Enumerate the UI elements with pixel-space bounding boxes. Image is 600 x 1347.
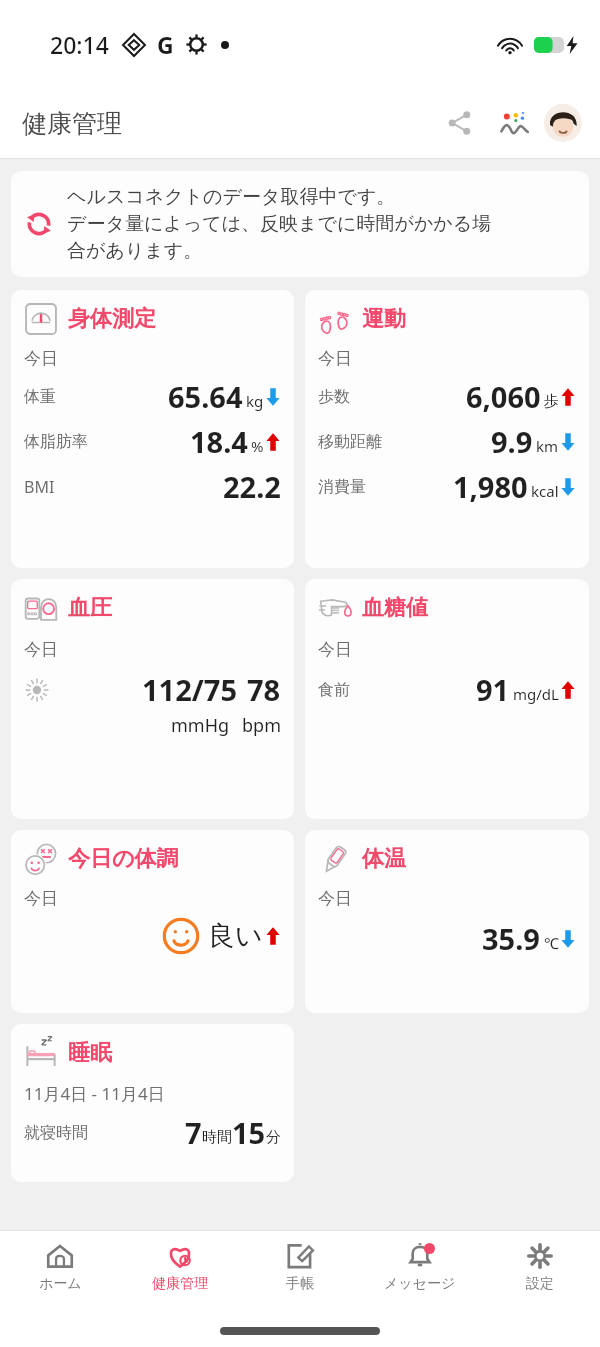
staticText: 健康管理 (22, 108, 122, 139)
staticText: 血圧 (68, 594, 112, 622)
staticText: 今日 (24, 639, 58, 660)
staticText: 6,060 (466, 377, 541, 416)
staticText: 11月4日 - 11月4日 (24, 1082, 165, 1105)
staticText: 移動距離 (318, 432, 382, 452)
staticText: kcal (531, 481, 559, 501)
staticText: BMI (24, 476, 55, 498)
button[interactable]: メッセージ (360, 1231, 480, 1315)
staticText: 食前 (318, 680, 350, 700)
staticText: 設定 (526, 1275, 554, 1293)
staticText: 78 (247, 670, 281, 709)
button[interactable]: 設定 (480, 1231, 600, 1315)
staticText: 18.4 (190, 422, 248, 461)
staticText: mg/dL (513, 684, 559, 704)
staticText: kg (246, 391, 264, 411)
staticText: 合があります。 (67, 239, 203, 263)
staticText: 血糖値 (362, 594, 428, 622)
button[interactable]: 体温 (305, 830, 589, 1013)
staticText: 体重 (24, 387, 56, 407)
staticText: 1,980 (453, 467, 528, 506)
staticText: 15 (232, 1113, 266, 1152)
button[interactable]: 手帳 (240, 1231, 360, 1315)
staticText: bpm (242, 713, 281, 738)
staticText: ヘルスコネクトのデータ取得中です。 (67, 185, 396, 209)
staticText: 今日 (318, 888, 352, 909)
staticText: 9.9 (491, 422, 533, 461)
button[interactable]: ヘルスコネクトのデータ取得中です。 (11, 171, 589, 277)
staticText: 体温 (362, 845, 406, 873)
button[interactable]: 血糖値 (305, 579, 589, 819)
staticText: 健康管理 (152, 1275, 208, 1293)
staticText: 睡眠 (68, 1039, 112, 1067)
staticText: 身体測定 (68, 305, 156, 333)
staticText: 65.64 (168, 377, 243, 416)
staticText: 今日 (24, 888, 58, 909)
staticText: 歩数 (318, 387, 350, 407)
staticText: 良い (208, 919, 263, 953)
staticText: 体脂肪率 (24, 432, 88, 452)
staticText: 22.2 (223, 467, 281, 506)
staticText: 7 (185, 1113, 202, 1152)
staticText: 今日 (24, 348, 58, 369)
button[interactable]: Profile (544, 104, 582, 142)
button[interactable]: ホーム (0, 1231, 120, 1315)
button[interactable]: 身体測定 (11, 290, 294, 568)
button[interactable]: Assistant (492, 101, 536, 145)
button[interactable]: 運動 (305, 290, 589, 568)
staticText: データ量によっては、反映までに時間がかかる場 (67, 212, 492, 236)
staticText: 就寝時間 (24, 1123, 88, 1143)
button[interactable]: 血圧 (11, 579, 294, 819)
staticText: 112/75 (142, 670, 237, 709)
staticText: 運動 (362, 305, 406, 333)
staticText: mmHg (171, 713, 230, 738)
staticText: 今日 (318, 639, 352, 660)
staticText: ホーム (39, 1275, 82, 1293)
button[interactable]: 今日の体調 (11, 830, 294, 1013)
staticText: 20:14 (50, 29, 109, 60)
staticText: 消費量 (318, 477, 366, 497)
staticText: % (251, 436, 264, 456)
staticText: ℃ (544, 933, 559, 953)
staticText: 今日の体調 (68, 845, 179, 873)
button[interactable]: 睡眠 (11, 1024, 294, 1182)
button[interactable]: Share (438, 101, 482, 145)
staticText: 手帳 (286, 1275, 314, 1293)
staticText: 分 (266, 1128, 281, 1147)
staticText: 時間 (202, 1128, 232, 1147)
staticText: 歩 (544, 392, 559, 411)
staticText: 35.9 (482, 919, 540, 958)
staticText: G (157, 29, 174, 60)
staticText: 今日 (318, 348, 352, 369)
staticText: km (536, 436, 559, 456)
button[interactable]: 健康管理 (120, 1231, 240, 1315)
staticText: 91 (476, 670, 510, 709)
staticText: メッセージ (384, 1275, 456, 1293)
